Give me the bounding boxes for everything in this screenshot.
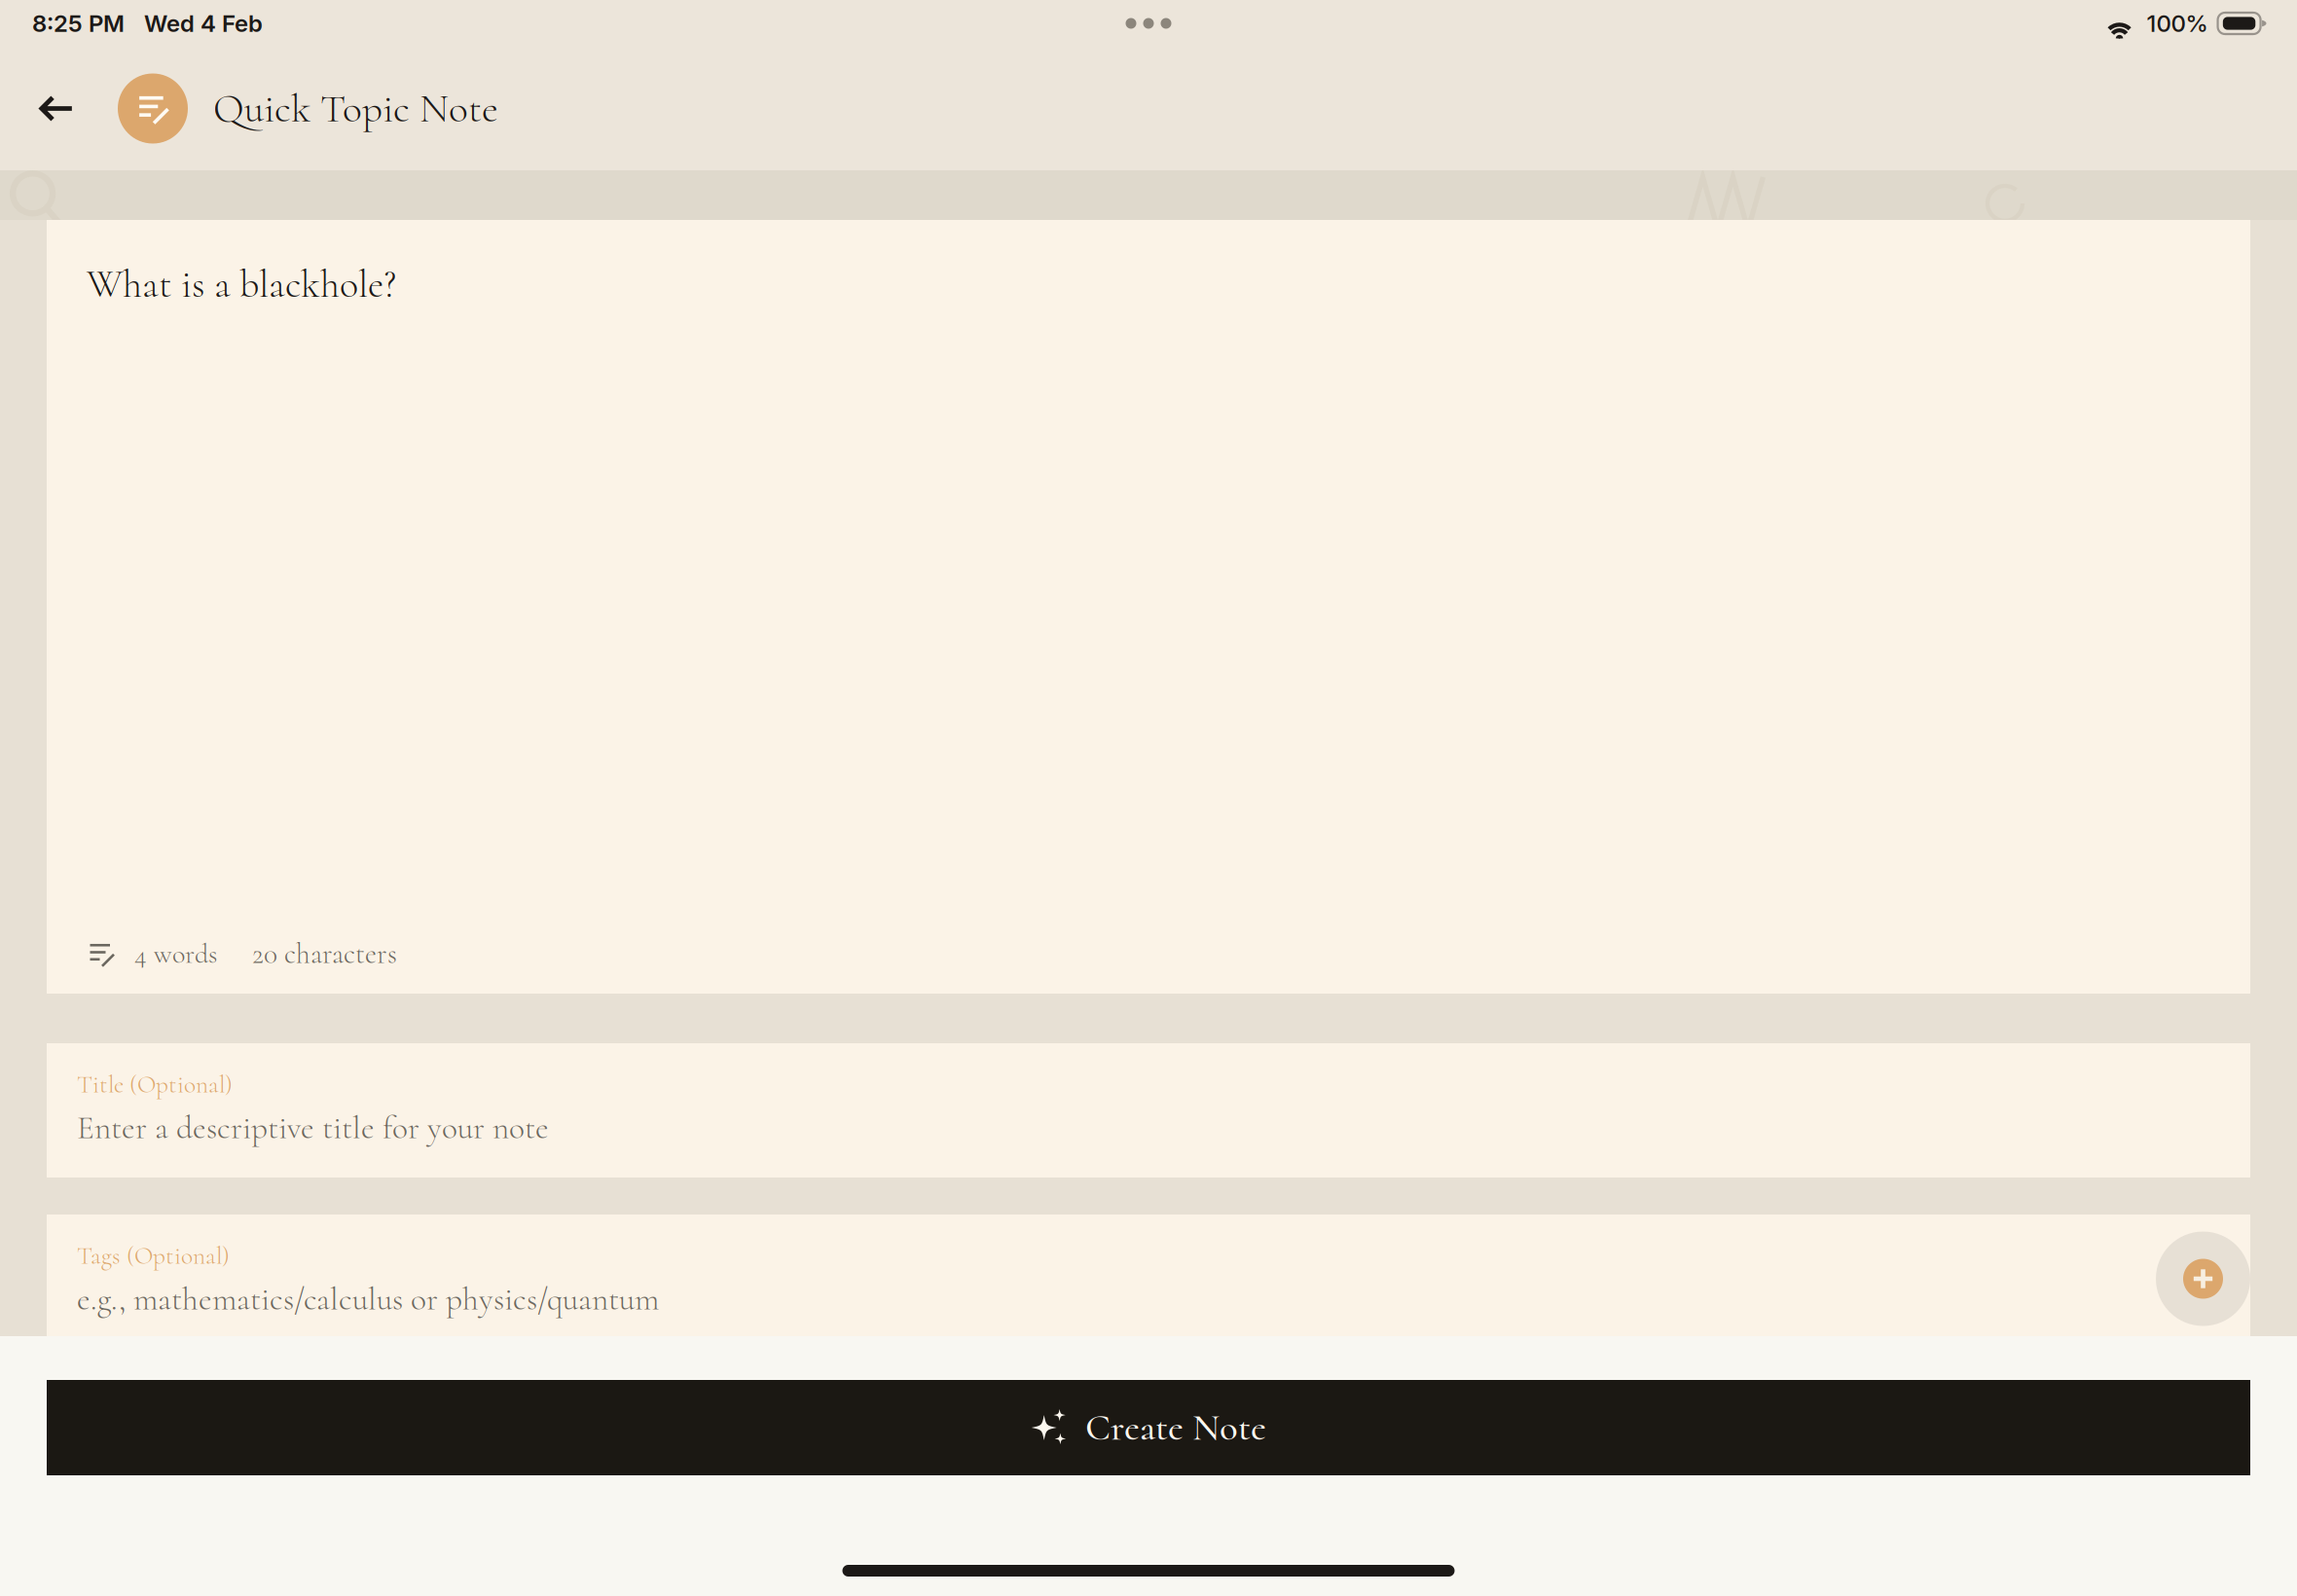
staticText: 4 words (134, 937, 217, 970)
staticText: What is a blackhole? (87, 261, 396, 308)
button[interactable]: Create Note (47, 1380, 2250, 1475)
staticText: Quick Topic Note (213, 84, 498, 133)
staticText: Tags (Optional) (77, 1241, 230, 1271)
staticText: Create Note (1085, 1405, 1266, 1450)
staticText: Enter a descriptive title for your note (77, 1108, 549, 1147)
staticText: 20 characters (252, 937, 397, 971)
button[interactable]: Add tag (2156, 1232, 2250, 1326)
button[interactable]: Note (118, 73, 188, 144)
staticText: Wed 4 Feb (144, 9, 263, 37)
button[interactable]: Back (22, 63, 91, 154)
staticText: 8:25 PM (32, 9, 125, 37)
staticText: 100% (2147, 9, 2208, 37)
staticText: Title (Optional) (77, 1070, 233, 1099)
staticText: e.g., mathematics/calculus or physics/qu… (77, 1279, 659, 1319)
